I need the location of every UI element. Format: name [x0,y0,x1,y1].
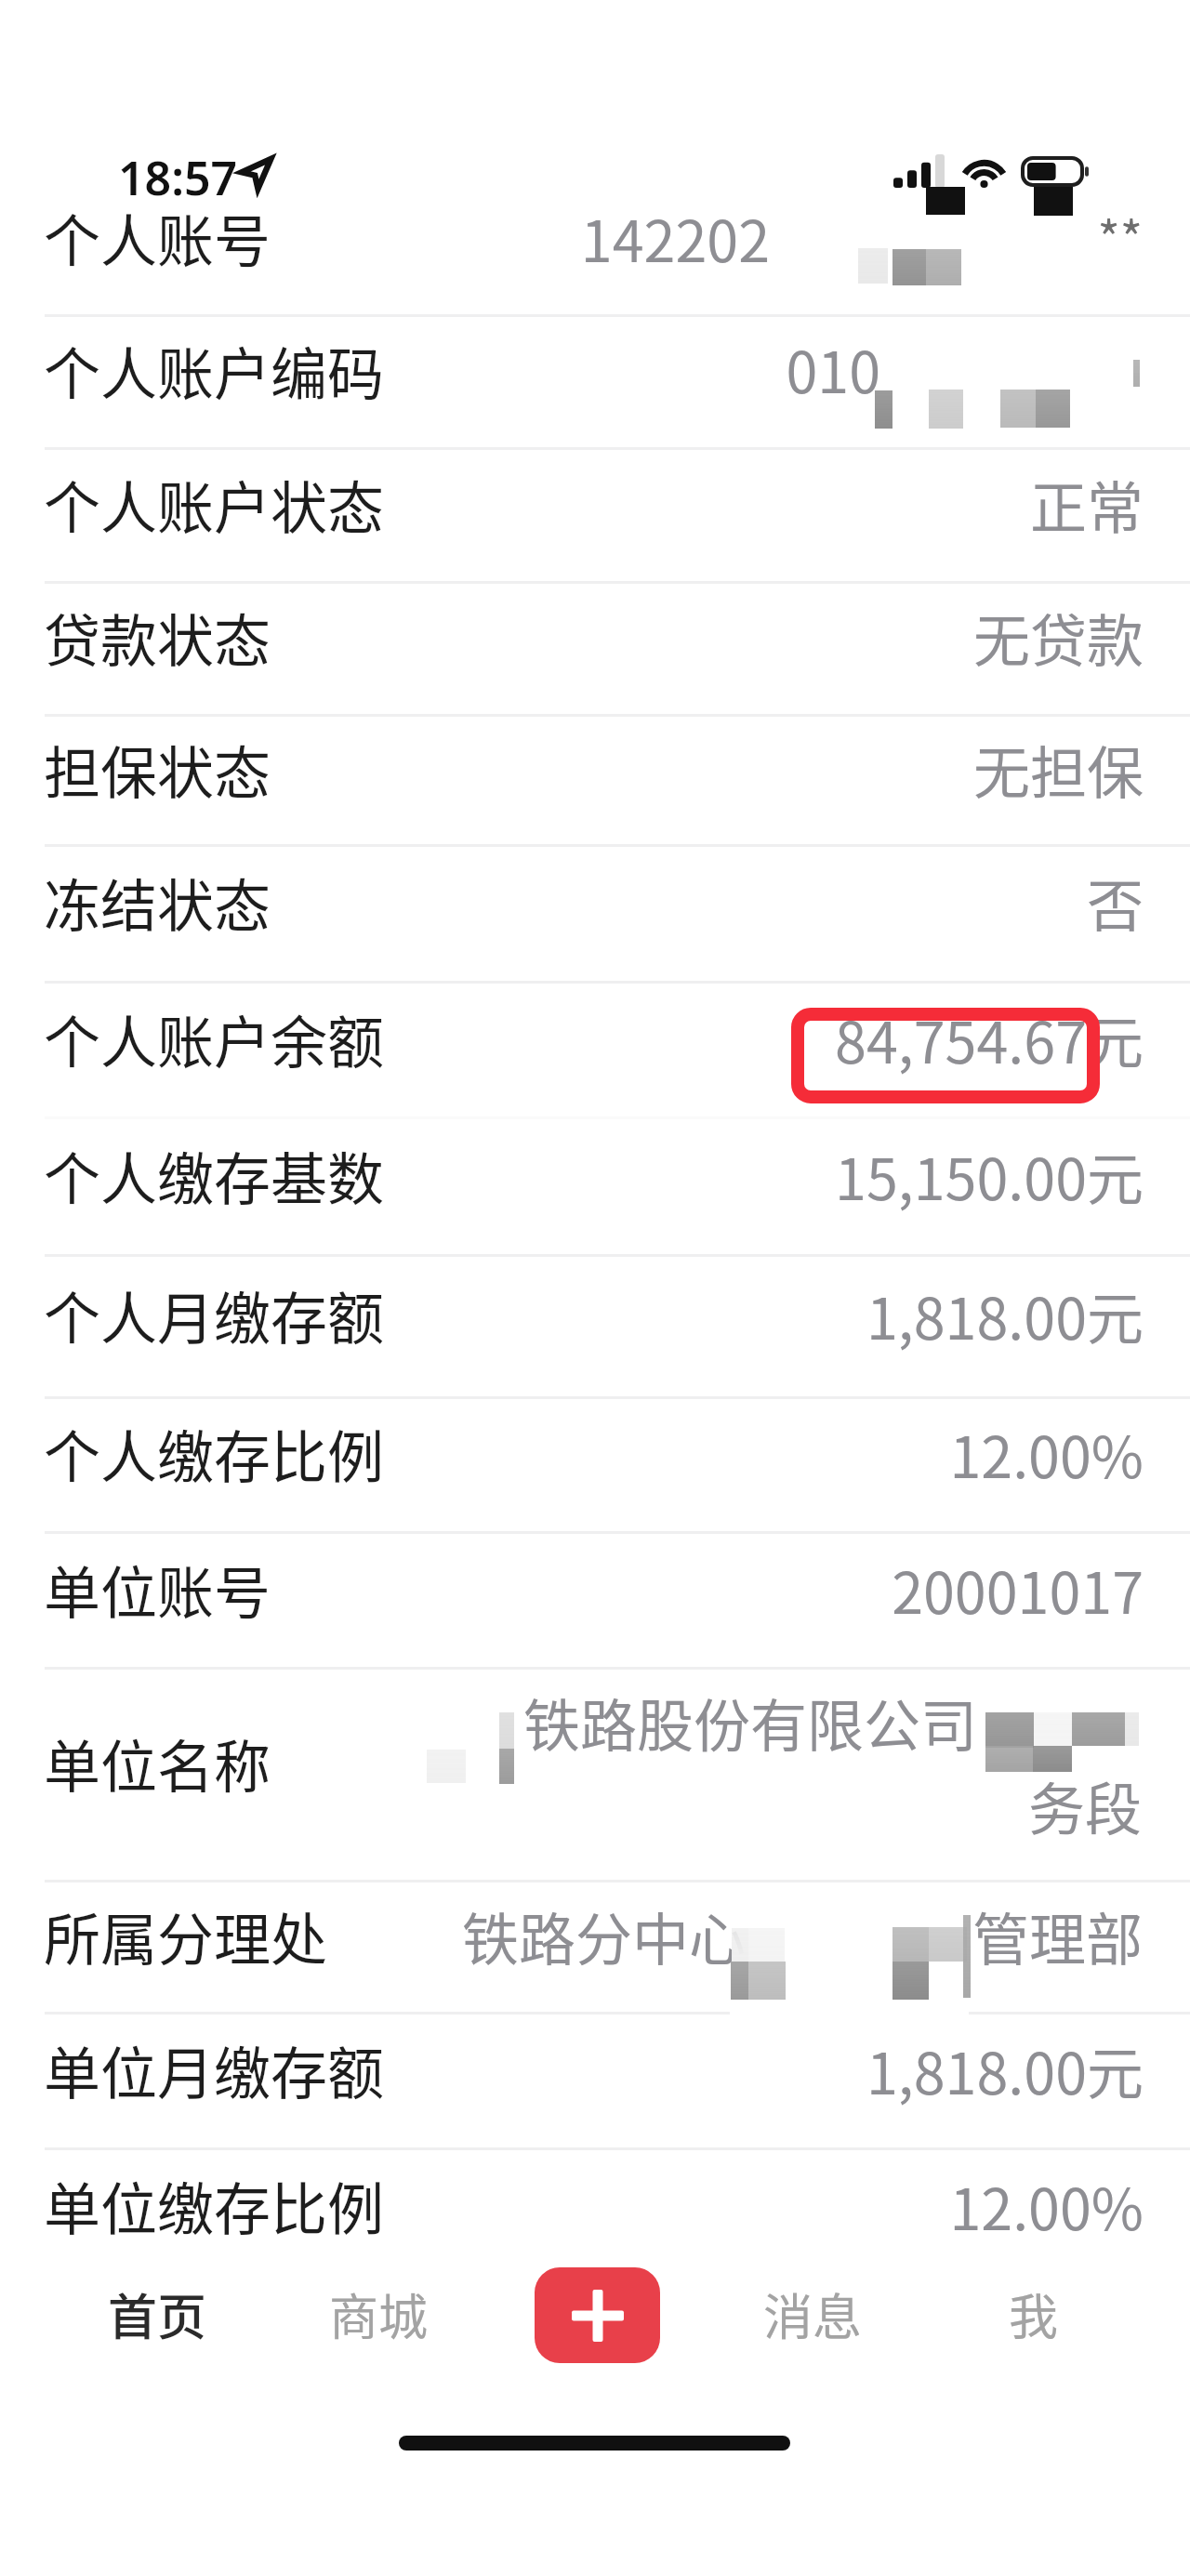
button[interactable] [0,844,1190,981]
button[interactable] [0,981,1190,1116]
button[interactable]: 首页 [87,2253,227,2374]
button[interactable] [0,1880,1190,2012]
staticText: 个人账户余额 [44,997,385,1079]
staticText: 84,754.67元 [835,997,1144,1079]
staticText: 15,150.00元 [835,1134,1144,1216]
button[interactable]: 消息 [743,2253,882,2374]
staticText: 12.00% [949,1412,1144,1494]
staticText: 20001017 [892,1548,1144,1630]
staticText: 单位名称 [44,1722,271,1803]
staticText: 所属分理处 [44,1895,328,1976]
staticText: 贷款状态 [44,596,271,678]
button[interactable]: 商城 [309,2253,448,2374]
staticText: 正常 [1029,463,1144,545]
button[interactable]: 我 [963,2253,1103,2374]
staticText: 单位缴存比例 [44,2164,385,2246]
button[interactable] [0,714,1190,844]
staticText: 个人账户编码 [44,329,385,411]
staticText: 消息 [763,2279,862,2350]
staticText: 单位账号 [44,1548,271,1630]
staticText: 12.00% [949,2164,1144,2246]
button[interactable]: Add [535,2267,660,2363]
button[interactable] [0,1116,1190,1254]
button[interactable] [0,1667,1190,1880]
staticText: 我 [1009,2279,1058,2350]
button[interactable] [0,314,1190,447]
staticText: 1,818.00元 [866,2028,1144,2110]
button[interactable] [0,2012,1190,2147]
staticText: 务段 [1027,1764,1142,1846]
button[interactable] [0,447,1190,581]
button[interactable] [0,1254,1190,1396]
staticText: 无贷款 [972,596,1144,678]
staticText: 商城 [329,2279,428,2350]
staticText: 个人缴存基数 [44,1134,385,1216]
staticText: 个人月缴存额 [44,1274,385,1355]
button[interactable] [0,581,1190,714]
staticText: 单位月缴存额 [44,2028,385,2110]
staticText: 个人账号 [44,196,271,278]
button[interactable] [0,1531,1190,1667]
staticText: ** [1097,201,1143,271]
staticText: 无担保 [972,728,1144,810]
staticText: 否 [1086,861,1144,943]
staticText: 铁路分中心 [461,1895,746,1976]
button[interactable] [0,1396,1190,1531]
button[interactable] [0,2147,1190,2283]
staticText: 个人账户状态 [44,463,385,545]
staticText: 18:57 [118,146,238,209]
staticText: 担保状态 [44,728,271,810]
staticText: 010 [786,327,880,409]
staticText: 个人缴存比例 [44,1412,385,1494]
staticText: 142202 [580,196,770,278]
staticText: 首页 [108,2279,206,2350]
staticText: 铁路股份有限公司 [522,1681,977,1763]
staticText: 1,818.00元 [866,1274,1144,1355]
staticText: 冻结状态 [44,861,271,943]
button[interactable] [0,181,1190,314]
staticText: 管理部 [972,1895,1143,1976]
